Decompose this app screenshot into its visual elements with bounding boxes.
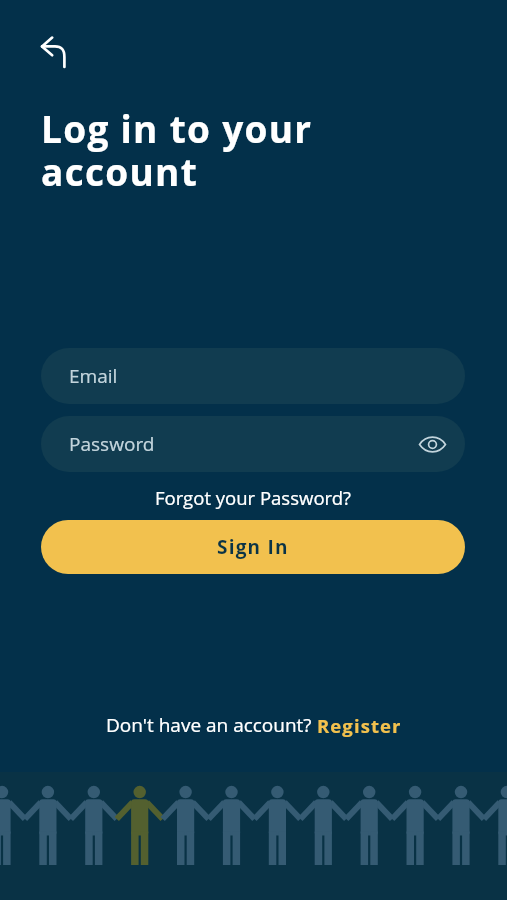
staticText: Forgot your Password? [155, 485, 352, 510]
staticText: Email [69, 363, 118, 389]
button[interactable]: Show password [413, 425, 451, 463]
button[interactable]: Sign In [41, 520, 465, 574]
staticText: Register [317, 713, 402, 738]
button[interactable]: Don't have an account? [102, 709, 406, 741]
button[interactable]: Back [29, 28, 77, 76]
staticText: Password [69, 431, 155, 457]
staticText: Log in to your account [41, 103, 313, 197]
button[interactable]: Password [41, 416, 465, 472]
staticText: Don't have an account? [106, 712, 317, 738]
staticText: Sign In [217, 534, 289, 560]
button[interactable]: Email [41, 348, 465, 404]
button[interactable]: Forgot your Password? [149, 482, 358, 513]
